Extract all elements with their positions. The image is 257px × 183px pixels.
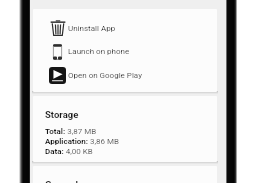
other: Launch on phone bbox=[53, 44, 62, 60]
staticText: Total: 3,87 MB Application: 3,86 MB Data… bbox=[45, 127, 120, 156]
staticText: Launch on phone bbox=[68, 47, 130, 56]
staticText: Uninstall App bbox=[68, 24, 116, 33]
button[interactable]: Open on Google Play bbox=[33, 63, 217, 87]
button[interactable]: Launch on phone bbox=[33, 40, 217, 63]
staticText: General bbox=[45, 179, 78, 183]
button[interactable]: Uninstall App bbox=[33, 16, 217, 40]
other: Open on Google Play bbox=[49, 67, 66, 84]
staticText: Open on Google Play bbox=[68, 71, 142, 80]
staticText: Storage bbox=[45, 109, 79, 120]
other: Uninstall App bbox=[50, 20, 66, 36]
